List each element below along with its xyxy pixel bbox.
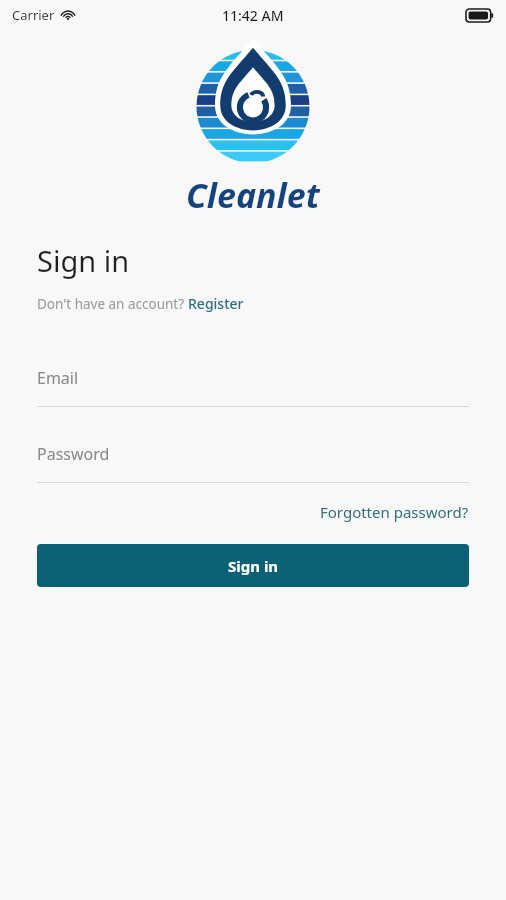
- staticText: Sign in: [37, 241, 130, 280]
- staticText: Email: [37, 367, 79, 389]
- staticText: Cleanlet: [186, 172, 320, 218]
- staticText: Carrier: [12, 6, 55, 24]
- staticText: Forgotten password?: [320, 502, 469, 522]
- staticText: Register: [188, 294, 244, 313]
- button[interactable]: Register: [188, 294, 244, 313]
- staticText: Password: [37, 443, 110, 465]
- staticText: Don't have an account?: [37, 295, 188, 313]
- button[interactable]: Sign in: [37, 544, 469, 587]
- staticText: Sign in: [228, 556, 279, 576]
- button[interactable]: Forgotten password?: [320, 500, 469, 524]
- staticText: 11:42 AM: [222, 6, 284, 25]
- button[interactable]: Password: [37, 437, 469, 483]
- button[interactable]: Email: [37, 361, 469, 407]
